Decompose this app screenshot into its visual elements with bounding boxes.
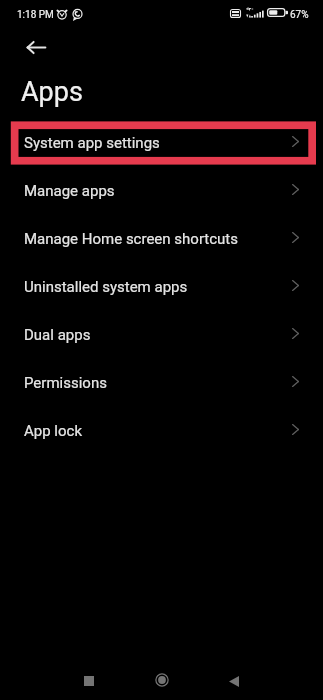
button[interactable]: Recent apps bbox=[70, 662, 108, 700]
staticText: 1:18 PM bbox=[17, 9, 54, 21]
staticText: App lock bbox=[24, 422, 83, 440]
button[interactable]: Back bbox=[17, 28, 55, 66]
staticText: Manage Home screen shortcuts bbox=[24, 230, 239, 248]
button[interactable]: Dual apps bbox=[0, 311, 323, 359]
button[interactable]: App lock bbox=[0, 407, 323, 455]
button[interactable]: Home bbox=[143, 661, 181, 699]
button[interactable]: Uninstalled system apps bbox=[0, 263, 323, 311]
button[interactable]: Manage apps bbox=[0, 167, 323, 215]
button[interactable]: Manage Home screen shortcuts bbox=[0, 215, 323, 263]
staticText: Apps bbox=[21, 76, 83, 108]
staticText: Permissions bbox=[24, 374, 107, 392]
staticText: Dual apps bbox=[24, 326, 91, 344]
staticText: Uninstalled system apps bbox=[24, 278, 188, 296]
staticText: Manage apps bbox=[24, 182, 115, 200]
button[interactable]: System app settings bbox=[0, 119, 323, 167]
button[interactable]: Permissions bbox=[0, 359, 323, 407]
staticText: System app settings bbox=[24, 134, 160, 152]
staticText: 67% bbox=[290, 9, 309, 21]
button[interactable]: Back bbox=[215, 662, 253, 700]
